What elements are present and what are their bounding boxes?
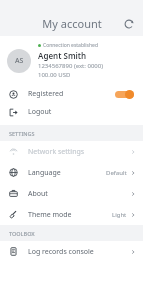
staticText: About — [28, 189, 130, 199]
button[interactable]: Theme mode — [0, 204, 143, 225]
staticText: Agent Smith — [38, 50, 87, 61]
button[interactable]: About — [0, 183, 143, 204]
staticText: Language — [28, 168, 106, 178]
button[interactable]: Registered — [0, 85, 143, 103]
staticText: 1234567890 (ext: 0000) — [38, 62, 103, 70]
staticText: 100.00 USD — [38, 71, 71, 79]
staticText: Default — [106, 169, 127, 177]
staticText: Light — [112, 211, 127, 219]
staticText: AS — [15, 56, 24, 66]
button[interactable]: Network settings — [0, 141, 143, 162]
staticText: Logout — [28, 107, 52, 117]
staticText: SETTINGS — [9, 130, 35, 137]
button[interactable]: Log records console — [0, 241, 143, 262]
staticText: Network settings — [28, 147, 130, 157]
button[interactable]: AS — [0, 36, 143, 85]
staticText: Log records console — [28, 247, 130, 257]
button[interactable]: Language — [0, 162, 143, 183]
staticText: Connection established — [43, 42, 98, 49]
staticText: Registered — [28, 89, 115, 99]
staticText: My account — [42, 16, 102, 31]
button[interactable]: Logout — [0, 103, 143, 121]
button[interactable]: Refresh — [119, 14, 139, 34]
staticText: TOOLBOX — [9, 230, 35, 237]
staticText: Theme mode — [28, 210, 112, 220]
